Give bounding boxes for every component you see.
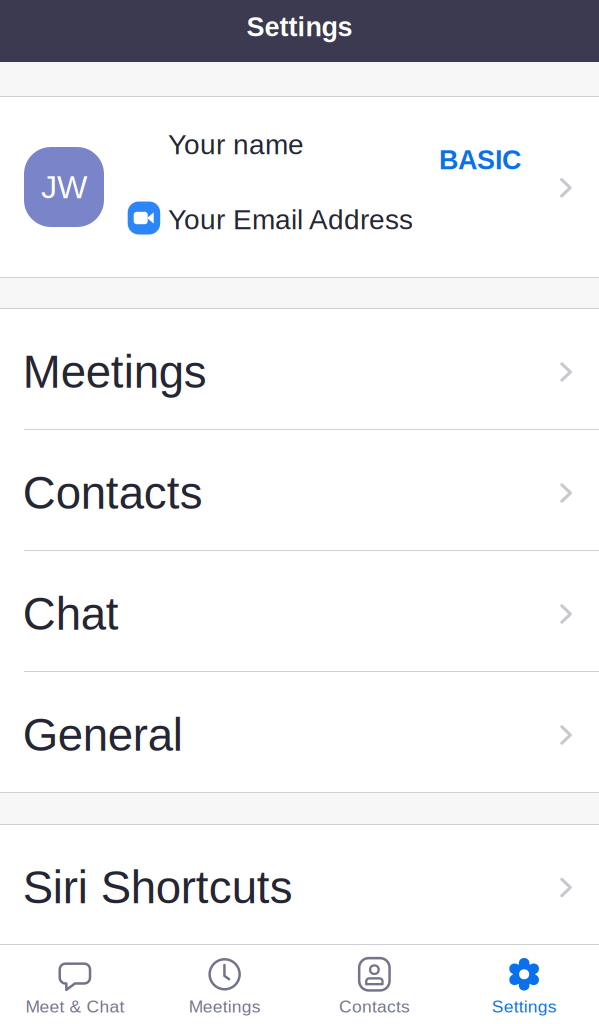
staticText: Meetings [189, 997, 261, 1016]
button[interactable]: General [0, 672, 599, 792]
staticText: Siri Shortcuts [23, 862, 293, 913]
button[interactable]: Settings [449, 945, 599, 1024]
staticText: JW [41, 169, 87, 205]
button[interactable]: Meetings [0, 309, 599, 429]
staticText: Your Email Address [168, 204, 413, 235]
staticText: Your name [168, 129, 304, 160]
button[interactable]: Siri Shortcuts [0, 825, 599, 944]
staticText: General [23, 709, 183, 760]
staticText: Contacts [339, 997, 410, 1016]
staticText: Contacts [23, 467, 203, 518]
button[interactable]: Meet & Chat [0, 945, 150, 1024]
button[interactable]: Chat [0, 551, 599, 671]
button[interactable]: Meetings [150, 945, 300, 1024]
staticText: Settings [492, 997, 557, 1016]
staticText: Meet & Chat [25, 997, 124, 1016]
button[interactable]: Your name, Your Email Address, BASIC pla… [0, 97, 599, 277]
staticText: BASIC [439, 145, 521, 175]
staticText: Meetings [23, 346, 207, 397]
staticText: Settings [246, 12, 352, 42]
staticText: Chat [23, 588, 119, 639]
button[interactable]: Contacts [299, 945, 449, 1024]
button[interactable]: Contacts [0, 430, 599, 550]
